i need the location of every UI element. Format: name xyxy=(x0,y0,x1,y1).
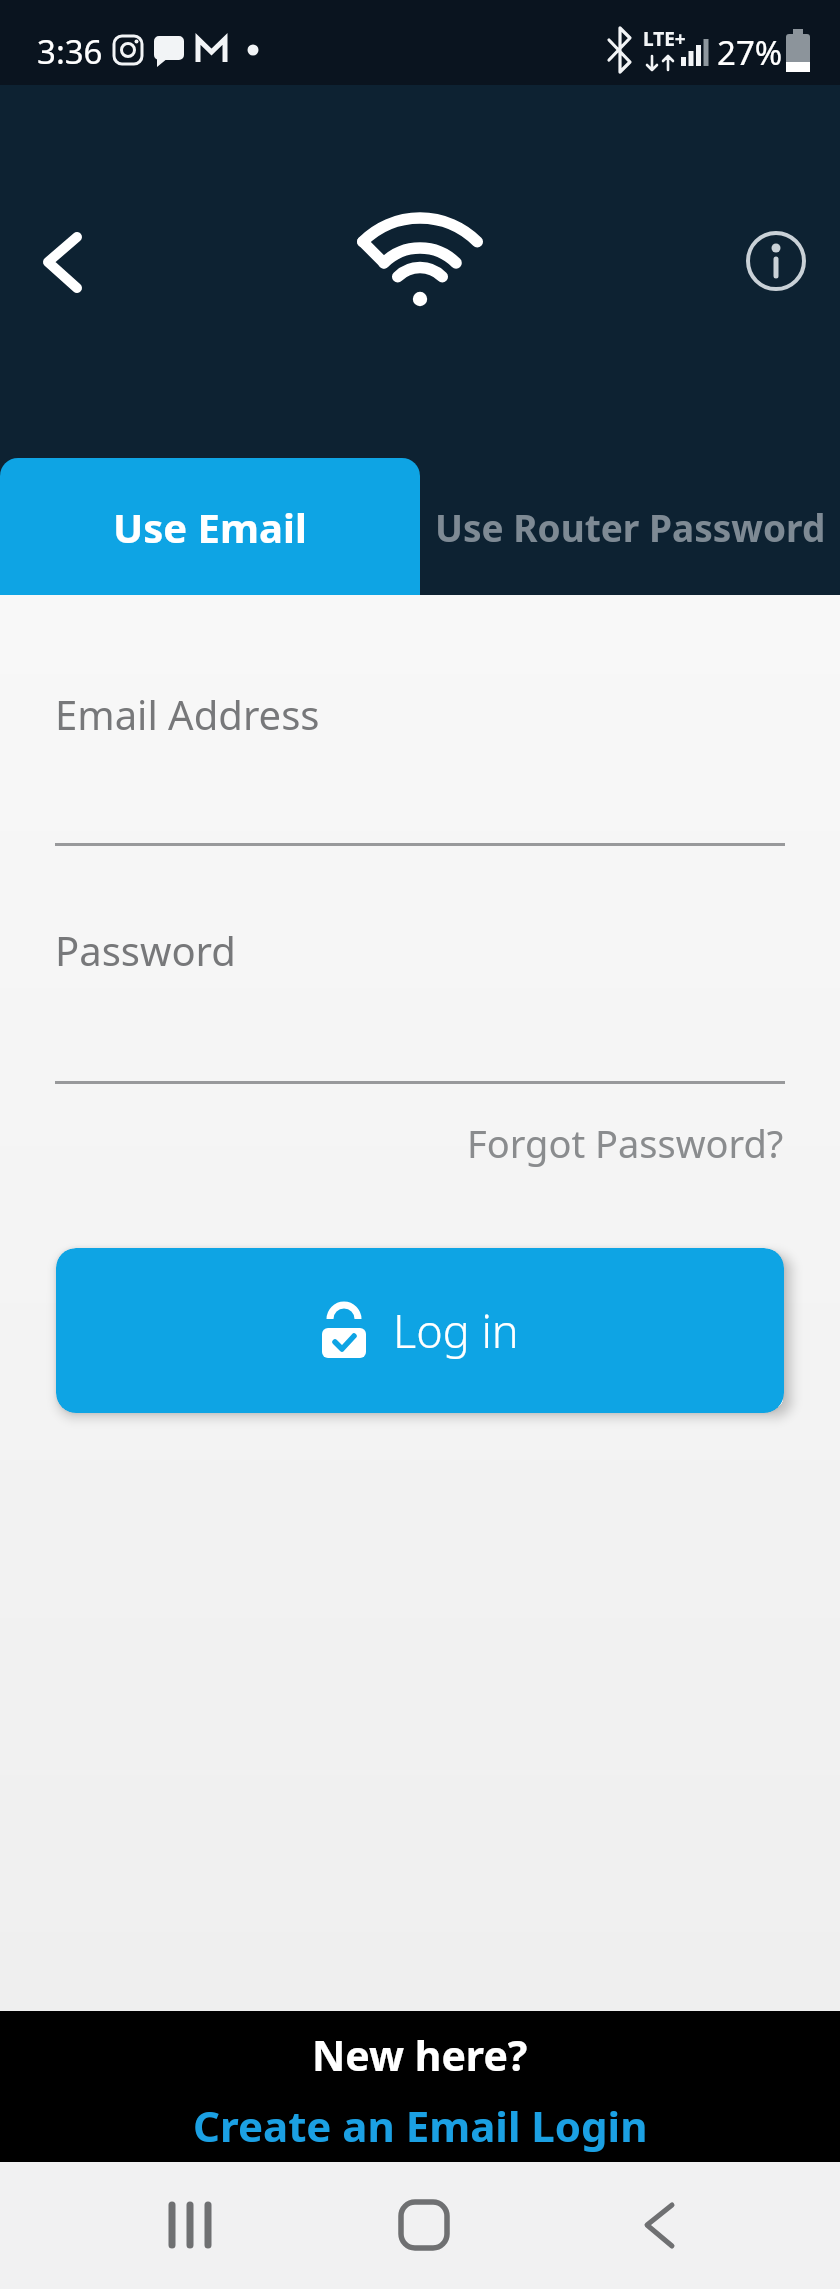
staticText: Password xyxy=(55,923,236,977)
staticText: Use Email xyxy=(113,500,307,554)
staticText: Forgot Password? xyxy=(467,1117,784,1169)
staticText: Log in xyxy=(393,1300,519,1361)
button[interactable]: Use Email xyxy=(0,458,420,595)
staticText: 27% xyxy=(717,30,783,75)
staticText: LTE+ xyxy=(643,26,686,52)
button[interactable] xyxy=(280,2162,560,2289)
button[interactable]: Use Router Password xyxy=(420,458,840,595)
button[interactable] xyxy=(740,225,812,297)
staticText: 3:36 xyxy=(37,29,103,74)
button[interactable] xyxy=(0,2162,280,2289)
button[interactable] xyxy=(560,2162,840,2289)
staticText: Email Address xyxy=(55,687,320,741)
button[interactable]: Create an Email Login xyxy=(193,2097,648,2154)
staticText: New here? xyxy=(312,2027,528,2083)
staticText: Use Router Password xyxy=(435,502,826,552)
button[interactable]: Log in xyxy=(56,1248,784,1413)
button[interactable]: Forgot Password? xyxy=(420,1115,784,1171)
button[interactable] xyxy=(20,215,110,305)
